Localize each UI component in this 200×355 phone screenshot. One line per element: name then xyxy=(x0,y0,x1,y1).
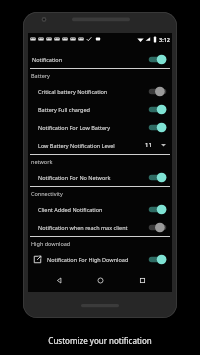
staticText: Notification For High Download xyxy=(47,256,129,263)
button[interactable]: Toggle off xyxy=(148,222,167,233)
staticText: Notification For No Network xyxy=(38,174,111,181)
button[interactable]: Toggle on xyxy=(148,122,167,133)
button[interactable]: Battery Full charged xyxy=(28,100,172,118)
button[interactable]: Toggle on xyxy=(148,104,167,115)
button[interactable]: Notification For No Network xyxy=(28,168,172,186)
button[interactable]: Back xyxy=(48,269,70,291)
staticText: Notification when reach max client xyxy=(38,224,128,231)
button[interactable]: Home xyxy=(89,269,111,291)
staticText: Battery Full charged xyxy=(38,106,90,113)
staticText: Connectivity xyxy=(31,190,63,197)
button[interactable]: Notification For Low Battery xyxy=(28,118,172,136)
button[interactable]: Toggle off xyxy=(148,86,167,97)
staticText: High download xyxy=(31,240,71,247)
staticText: Critical battery Notification xyxy=(38,88,108,95)
button[interactable]: Toggle on xyxy=(148,204,167,215)
button[interactable]: Notification For High Download xyxy=(28,250,172,268)
staticText: network xyxy=(31,158,53,165)
staticText: Notification For Low Battery xyxy=(38,124,111,131)
button[interactable]: Notification when reach max client xyxy=(28,218,172,236)
staticText: Notification xyxy=(32,56,63,63)
button[interactable]: Recents xyxy=(131,269,153,291)
button[interactable]: Toggle on xyxy=(148,172,167,183)
button[interactable]: Toggle on xyxy=(148,54,167,65)
staticText: 11 xyxy=(145,141,152,149)
staticText: Customize your notification xyxy=(48,335,152,346)
staticText: 3:12 xyxy=(159,36,170,43)
button[interactable]: Notification xyxy=(28,50,172,68)
button[interactable]: Critical battery Notification xyxy=(28,82,172,100)
button[interactable]: Toggle on xyxy=(148,254,167,265)
staticText: Client Added Notification xyxy=(38,206,103,213)
button[interactable]: Low Battery Notification Level xyxy=(28,136,172,154)
staticText: Low Battery Notification Level xyxy=(38,142,115,149)
staticText: Battery xyxy=(31,72,50,79)
button[interactable]: Client Added Notification xyxy=(28,200,172,218)
